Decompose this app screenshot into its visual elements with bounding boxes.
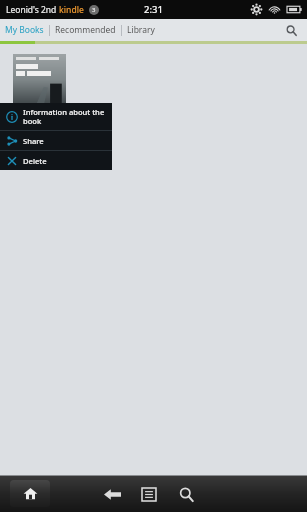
staticText: kindle [59, 4, 84, 16]
button[interactable]: Search [169, 477, 203, 511]
button[interactable]: Delete [0, 151, 112, 170]
button[interactable] [13, 54, 66, 132]
button[interactable]: My Books [0, 20, 49, 40]
staticText: My Books [5, 24, 44, 36]
button[interactable]: Search [281, 20, 301, 40]
staticText: 2:31 [144, 3, 163, 16]
staticText: Leonid's 2nd [6, 4, 59, 16]
button[interactable]: Information about the book [0, 103, 112, 130]
staticText: Share [23, 136, 44, 146]
staticText: 3 [92, 6, 96, 14]
staticText: Library [127, 24, 155, 36]
button[interactable]: Library [122, 20, 160, 40]
button[interactable]: Recommended [50, 20, 121, 40]
staticText: Recommended [55, 24, 116, 36]
staticText: Information about the book [23, 107, 105, 126]
button[interactable]: Menu [132, 477, 166, 511]
staticText: Delete [23, 156, 47, 166]
button[interactable]: Share [0, 131, 112, 150]
button[interactable]: Back [95, 477, 129, 511]
button[interactable]: Home [10, 480, 50, 507]
